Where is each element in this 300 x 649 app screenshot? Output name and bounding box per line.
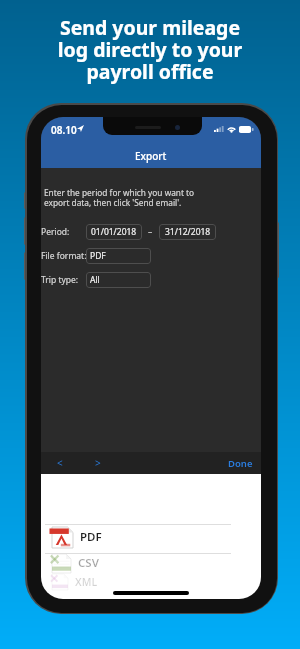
button[interactable]: PDF xyxy=(41,524,261,550)
staticText: Send your mileage log directly to your p… xyxy=(0,14,300,85)
staticText: Trip type: xyxy=(41,274,79,286)
staticText: Export xyxy=(135,149,167,163)
button[interactable]: CSV xyxy=(41,550,261,576)
staticText: File format: xyxy=(41,250,86,262)
button[interactable]: 31/12/2018 xyxy=(159,224,216,240)
staticText: 08.10 xyxy=(51,123,77,137)
button[interactable]: 01/01/2018 xyxy=(86,224,142,240)
staticText: PDF xyxy=(80,529,102,545)
staticText: CSV xyxy=(78,555,99,571)
button[interactable]: All xyxy=(86,272,151,288)
staticText: 31/12/2018 xyxy=(165,226,211,238)
button[interactable]: Previous field xyxy=(41,452,79,474)
staticText: All xyxy=(90,274,100,286)
button[interactable]: XML xyxy=(41,569,261,595)
staticText: < xyxy=(57,456,63,470)
staticText: XML xyxy=(75,575,98,589)
staticText: Enter the period for which you want to e… xyxy=(44,187,195,209)
staticText: > xyxy=(95,456,101,470)
staticText: PDF xyxy=(90,250,106,262)
staticText: Done xyxy=(228,457,253,470)
button[interactable]: PDF xyxy=(86,248,151,264)
staticText: – xyxy=(148,226,153,238)
staticText: 01/01/2018 xyxy=(91,226,137,238)
button[interactable]: Done xyxy=(117,452,261,474)
staticText: Period: xyxy=(41,226,70,238)
button[interactable]: Next field xyxy=(79,452,117,474)
